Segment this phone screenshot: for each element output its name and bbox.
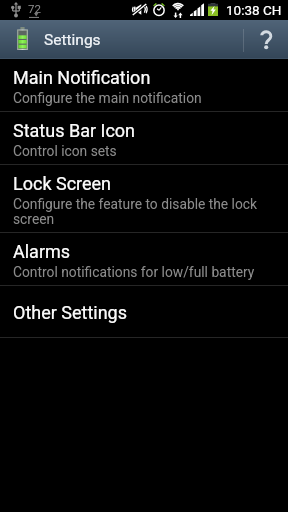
staticText: Lock Screen	[13, 173, 112, 194]
staticText: Configure the feature to disable the loc…	[13, 196, 283, 228]
staticText: Configure the main notification	[13, 90, 202, 106]
staticText: Status Bar Icon	[13, 120, 136, 141]
staticText: Main Notification	[13, 67, 151, 88]
staticText: 10:38 CH	[226, 2, 282, 18]
button[interactable]: Help	[244, 20, 288, 59]
staticText: Other Settings	[13, 302, 128, 323]
button[interactable]: Other Settings	[0, 286, 288, 337]
staticText: 72	[28, 2, 41, 15]
staticText: Alarms	[13, 241, 71, 262]
button[interactable]: Lock Screen	[0, 165, 288, 232]
button[interactable]: Settings	[0, 20, 230, 59]
staticText: Settings	[44, 31, 101, 49]
button[interactable]: Main Notification	[0, 59, 288, 111]
staticText: Control icon sets	[13, 143, 117, 159]
button[interactable]: Status Bar Icon	[0, 112, 288, 164]
staticText: Control notifications for low/full batte…	[13, 264, 255, 280]
button[interactable]: Alarms	[0, 233, 288, 285]
